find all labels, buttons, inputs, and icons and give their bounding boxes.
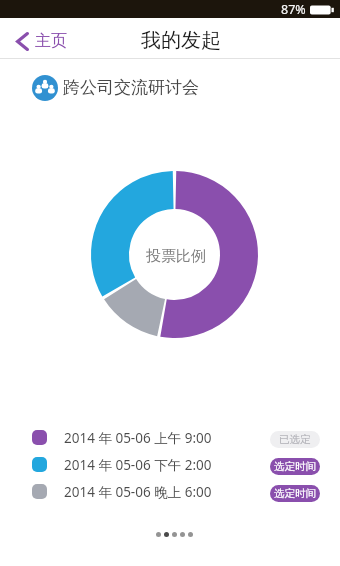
staticText: 选定时间	[274, 460, 316, 473]
button[interactable]: 跨公司交流研讨会	[0, 59, 340, 110]
button[interactable]: 主页	[0, 25, 81, 57]
staticText: 2014 年 05-06 晚上 6:00	[64, 483, 212, 501]
staticText: 2014 年 05-06 上午 9:00	[64, 429, 212, 447]
staticText: 选定时间	[274, 487, 316, 500]
staticText: 主页	[35, 31, 67, 51]
button[interactable]: 选定时间	[270, 485, 320, 502]
button[interactable]: 选定时间	[270, 458, 320, 475]
button[interactable]: 已选定	[270, 431, 320, 448]
staticText: 我的发起	[141, 28, 221, 53]
staticText: 已选定	[279, 433, 311, 446]
staticText: 87%	[281, 1, 306, 18]
staticText: 2014 年 05-06 下午 2:00	[64, 456, 212, 474]
staticText: 跨公司交流研讨会	[63, 77, 199, 98]
staticText: 投票比例	[146, 247, 206, 266]
